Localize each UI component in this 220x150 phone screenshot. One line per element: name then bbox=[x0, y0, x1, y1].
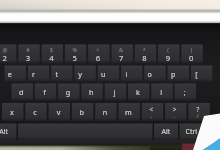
button[interactable] bbox=[0, 0, 220, 150]
